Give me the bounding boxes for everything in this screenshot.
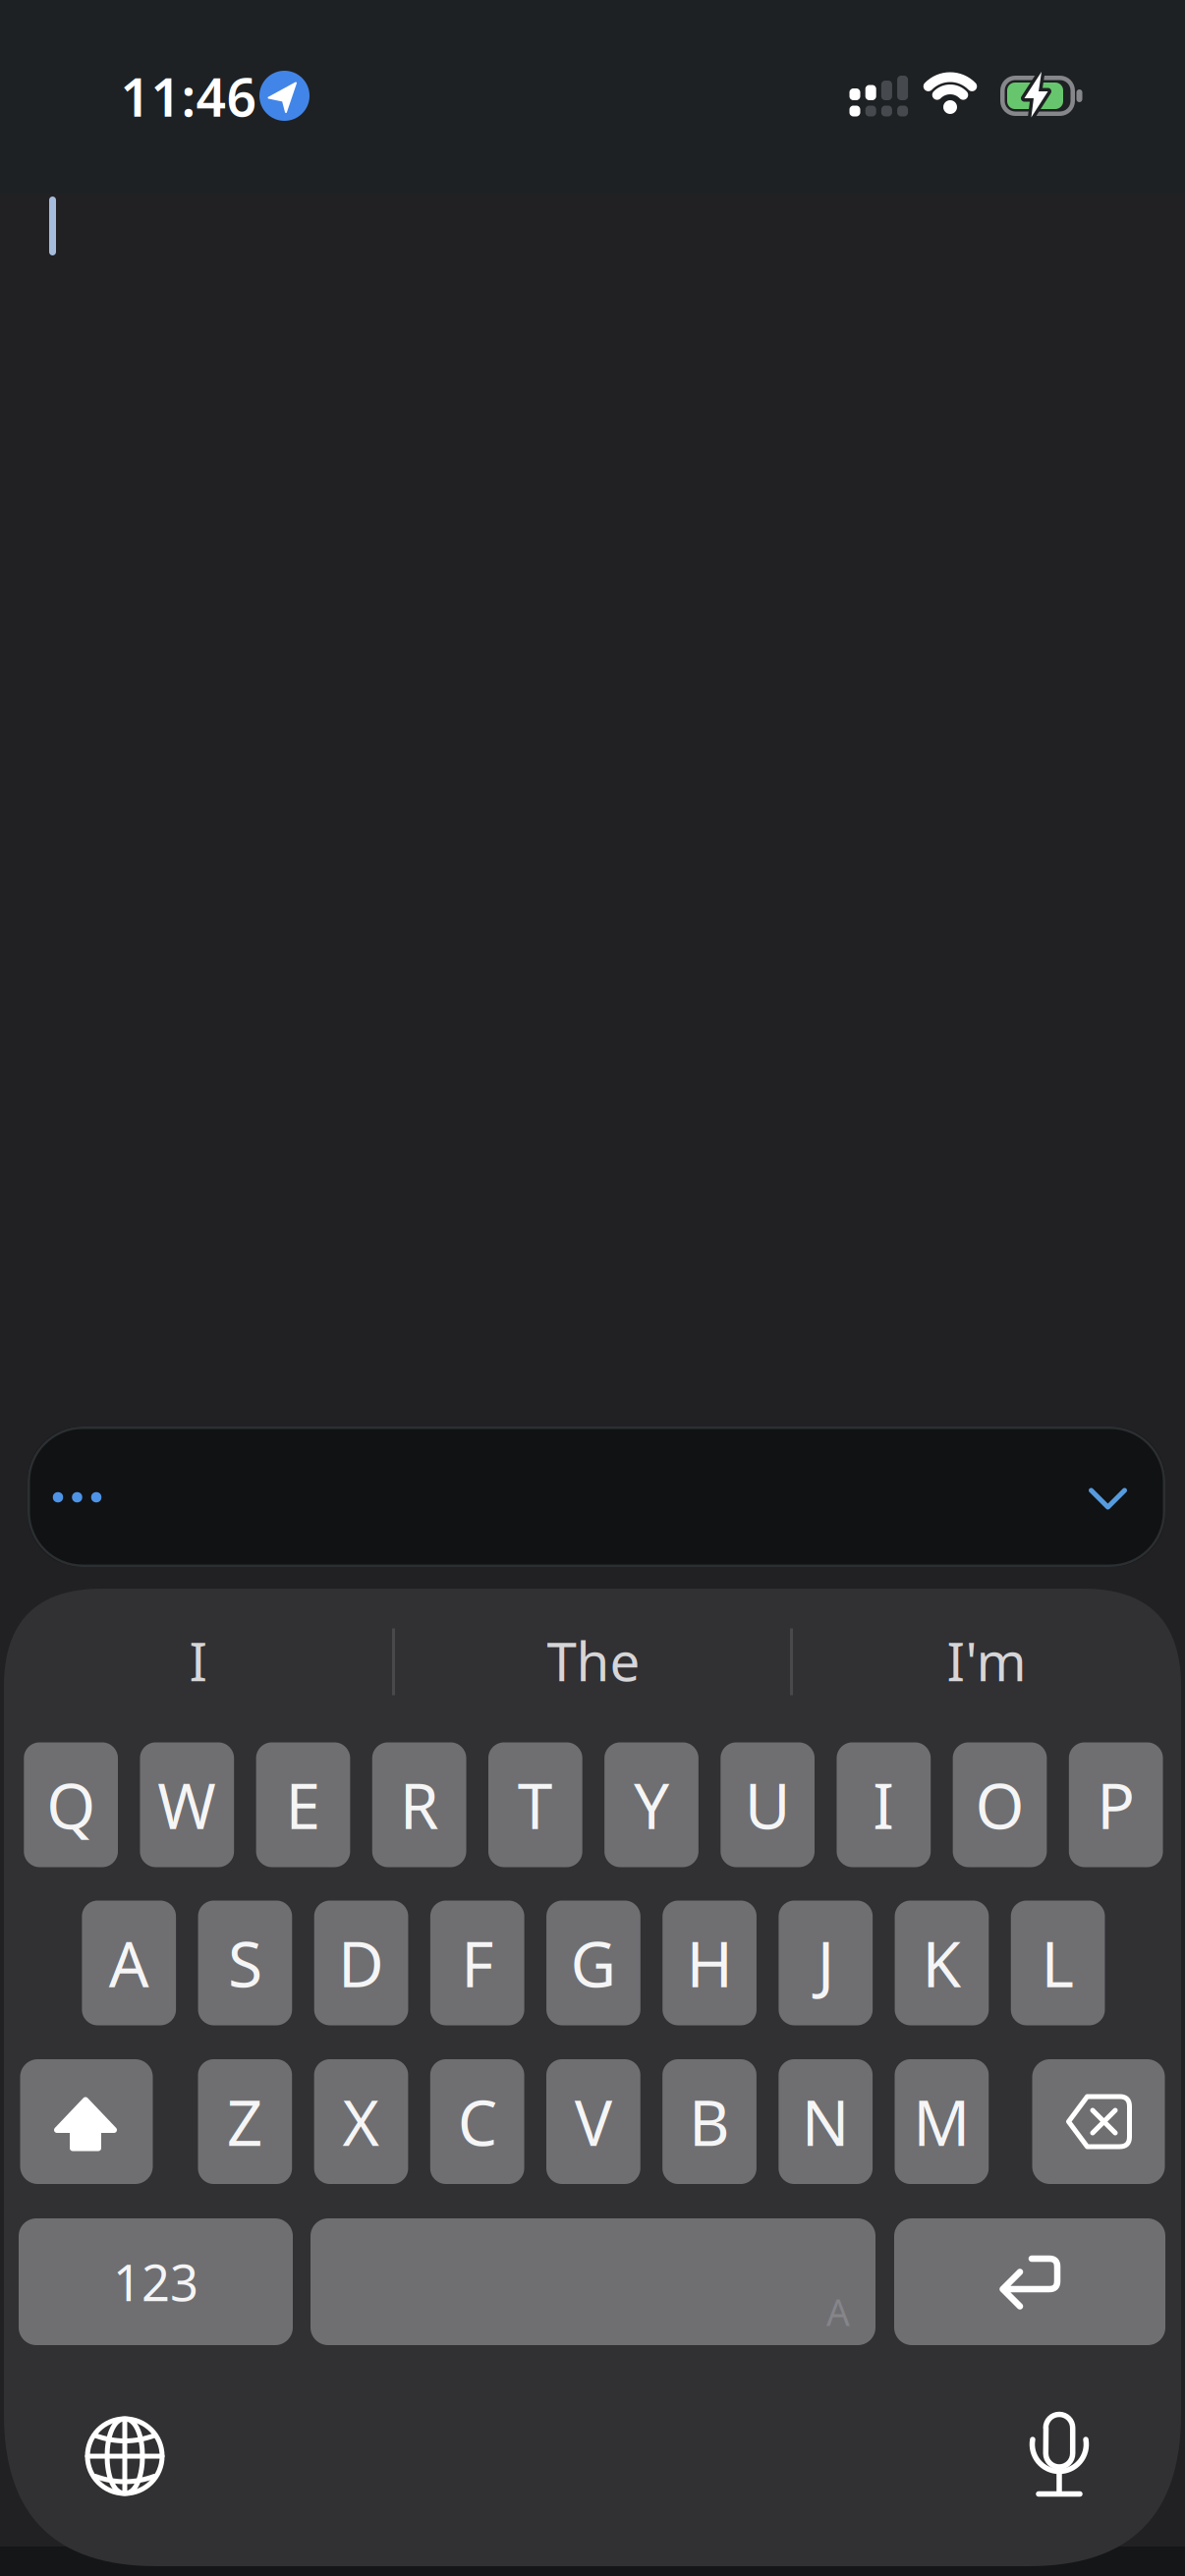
staticText: I	[189, 1625, 208, 1696]
button[interactable]: B	[662, 2059, 756, 2184]
button[interactable]: Y	[604, 1742, 698, 1867]
button[interactable]: K	[895, 1901, 989, 2025]
staticText: T	[518, 1763, 553, 1847]
staticText: R	[400, 1763, 439, 1847]
button[interactable]: V	[546, 2059, 640, 2184]
button[interactable]: H	[662, 1901, 756, 2025]
button[interactable]	[1032, 2059, 1165, 2184]
staticText: M	[913, 2080, 970, 2163]
button[interactable]	[1005, 2400, 1113, 2508]
button[interactable]: Q	[24, 1742, 118, 1867]
button[interactable]: T	[488, 1742, 582, 1867]
button[interactable]	[28, 1427, 1165, 1567]
button[interactable]	[33, 1468, 121, 1527]
staticText: X	[342, 2080, 380, 2163]
button[interactable]: 123	[19, 2218, 293, 2345]
button[interactable]	[20, 2059, 153, 2184]
staticText: Z	[227, 2080, 263, 2163]
button[interactable]: Z	[198, 2059, 292, 2184]
button[interactable]: W	[140, 1742, 234, 1867]
button[interactable]: R	[372, 1742, 466, 1867]
staticText: Y	[634, 1763, 669, 1847]
staticText: 11:46	[120, 62, 257, 131]
button[interactable]: L	[1011, 1901, 1105, 2025]
staticText: W	[158, 1763, 216, 1847]
button[interactable]: D	[314, 1901, 408, 2025]
button[interactable]: P	[1069, 1742, 1163, 1867]
staticText: F	[461, 1921, 494, 2005]
button[interactable]: C	[430, 2059, 524, 2184]
staticText: H	[686, 1921, 733, 2005]
button[interactable]: J	[779, 1901, 873, 2025]
staticText: 123	[113, 2249, 198, 2315]
staticText: A	[109, 1921, 149, 2005]
button[interactable]: E	[256, 1742, 350, 1867]
button[interactable]: I	[12, 1613, 385, 1708]
button[interactable]: M	[895, 2059, 989, 2184]
staticText: N	[801, 2080, 850, 2163]
button[interactable]: N	[779, 2059, 873, 2184]
staticText: K	[922, 1921, 961, 2005]
button[interactable]: F	[430, 1901, 524, 2025]
button[interactable]: I'm	[800, 1613, 1173, 1708]
staticText: D	[338, 1921, 384, 2005]
button[interactable]: A	[310, 2218, 875, 2345]
staticText: G	[570, 1921, 616, 2005]
button[interactable]: The	[407, 1613, 780, 1708]
button[interactable]: X	[314, 2059, 408, 2184]
staticText: V	[575, 2080, 612, 2163]
staticText: I	[873, 1763, 894, 1847]
button[interactable]: I	[837, 1742, 931, 1867]
button[interactable]	[1054, 1438, 1162, 1556]
button[interactable]: S	[198, 1901, 292, 2025]
button[interactable]: O	[953, 1742, 1047, 1867]
staticText: S	[228, 1921, 262, 2005]
staticText: O	[975, 1763, 1024, 1847]
staticText: C	[458, 2080, 497, 2163]
staticText: P	[1097, 1763, 1135, 1847]
staticText: A	[826, 2287, 850, 2336]
button[interactable]: G	[546, 1901, 640, 2025]
button[interactable]: U	[721, 1742, 815, 1867]
staticText: E	[285, 1763, 321, 1847]
button[interactable]	[71, 2402, 179, 2510]
staticText: L	[1041, 1921, 1075, 2005]
button[interactable]: A	[82, 1901, 176, 2025]
staticText: Q	[46, 1763, 96, 1847]
staticText: J	[817, 1921, 834, 2005]
staticText: The	[547, 1625, 640, 1696]
staticText: I'm	[947, 1625, 1026, 1696]
staticText: B	[689, 2080, 730, 2163]
staticText: U	[745, 1763, 791, 1847]
button[interactable]	[894, 2218, 1165, 2345]
